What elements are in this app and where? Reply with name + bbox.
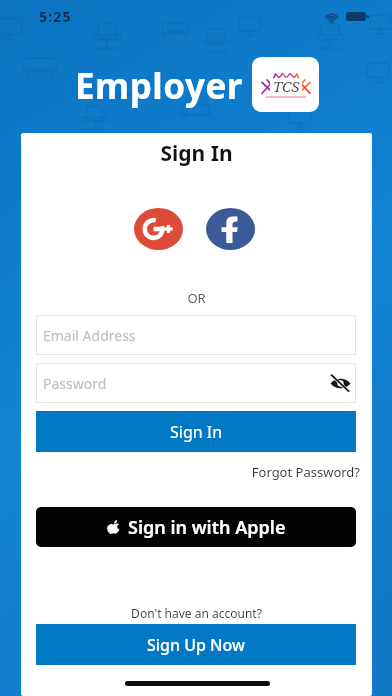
button[interactable]: Sign in with Apple — [36, 507, 356, 547]
button[interactable]: Sign Up Now — [36, 624, 356, 665]
staticText: TCS — [273, 76, 300, 96]
staticText: Employer — [75, 62, 243, 110]
button[interactable]: Sign in with Google — [134, 208, 183, 250]
button[interactable]: Password — [36, 363, 356, 403]
button[interactable]: Sign in with Facebook — [206, 208, 255, 250]
staticText: Sign In — [21, 139, 372, 168]
staticText: Sign In — [170, 421, 223, 443]
staticText: 5:25 — [39, 7, 72, 26]
staticText: Password — [43, 374, 107, 393]
button[interactable]: Email Address — [36, 315, 356, 355]
staticText: Email Address — [43, 326, 136, 345]
staticText: Sign in with Apple — [128, 515, 286, 540]
button[interactable]: Forgot Password? — [21, 463, 360, 481]
button[interactable]: Toggle password visibility — [327, 370, 353, 396]
staticText: OR — [21, 289, 372, 307]
staticText: Don't have an account? — [21, 605, 372, 621]
button[interactable]: Sign In — [36, 411, 356, 452]
staticText: Sign Up Now — [147, 634, 245, 656]
